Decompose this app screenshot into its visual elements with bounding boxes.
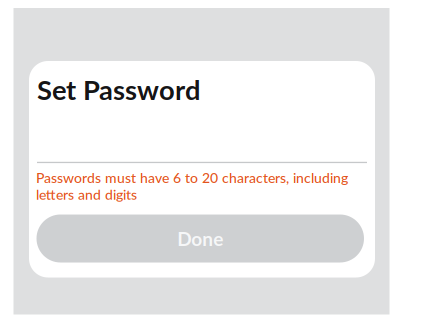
button[interactable]: Done <box>36 214 364 262</box>
staticText: Set Password <box>37 73 201 106</box>
staticText: Passwords must have 6 to 20 characters, … <box>36 169 348 203</box>
staticText: Done <box>177 227 223 250</box>
